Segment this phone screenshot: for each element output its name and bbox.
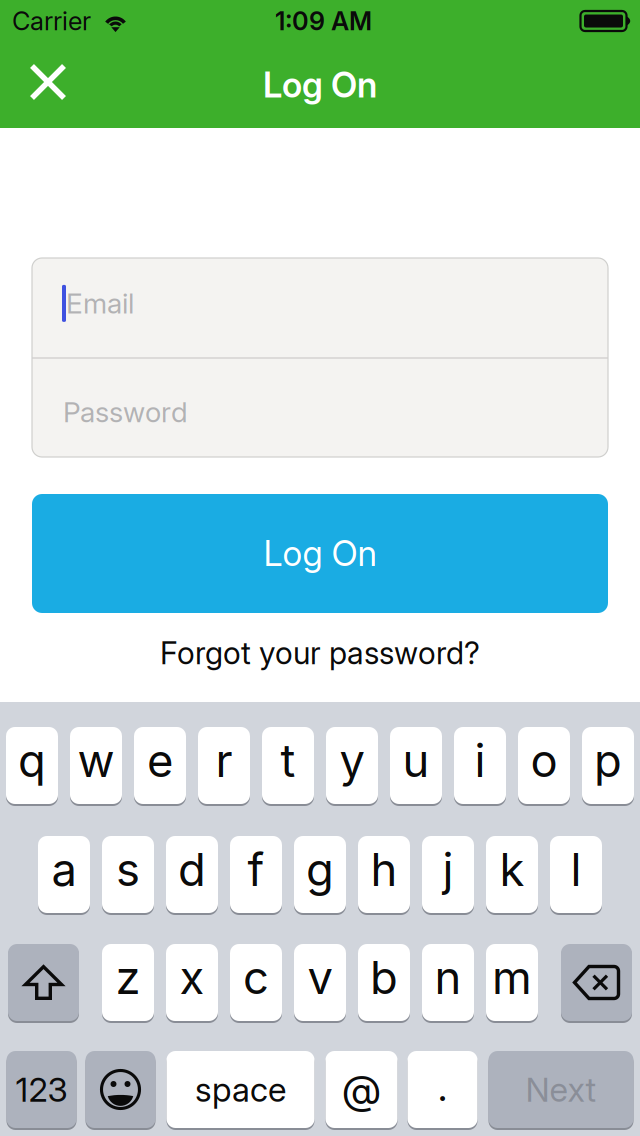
staticText: . xyxy=(438,1062,447,1111)
button[interactable]: p xyxy=(582,726,634,805)
staticText: l xyxy=(570,842,581,897)
staticText: q xyxy=(18,733,46,788)
staticText: i xyxy=(474,733,485,788)
button[interactable]: r xyxy=(198,726,250,805)
staticText: t xyxy=(280,733,295,788)
button[interactable] xyxy=(85,1050,155,1129)
staticText: 1:09 AM xyxy=(275,6,372,36)
button[interactable]: k xyxy=(486,835,538,914)
staticText: space xyxy=(195,1069,286,1110)
button[interactable]: u xyxy=(390,726,442,805)
staticText: Password xyxy=(63,395,188,429)
staticText: h xyxy=(370,842,397,897)
staticText: e xyxy=(147,733,173,788)
staticText: Log On xyxy=(263,532,376,574)
staticText: 123 xyxy=(15,1069,67,1110)
button[interactable]: . xyxy=(407,1050,477,1129)
button[interactable]: Forgot your password? xyxy=(32,630,608,676)
button[interactable]: n xyxy=(422,943,474,1022)
button[interactable]: space xyxy=(166,1050,314,1129)
staticText: r xyxy=(215,733,232,788)
button[interactable]: a xyxy=(38,835,90,914)
button[interactable]: o xyxy=(518,726,570,805)
staticText: c xyxy=(243,950,269,1005)
button[interactable]: x xyxy=(166,943,218,1022)
button[interactable]: w xyxy=(70,726,122,805)
staticText: g xyxy=(306,842,334,897)
staticText: s xyxy=(116,842,140,897)
staticText: Email xyxy=(66,286,134,320)
button[interactable]: y xyxy=(326,726,378,805)
staticText: Log On xyxy=(263,64,377,106)
button[interactable]: l xyxy=(550,835,602,914)
button[interactable]: z xyxy=(102,943,154,1022)
button[interactable]: t xyxy=(262,726,314,805)
staticText: d xyxy=(178,842,206,897)
staticText: j xyxy=(442,842,453,897)
staticText: a xyxy=(51,842,76,897)
staticText: p xyxy=(594,733,622,788)
button[interactable]: Log On xyxy=(32,494,608,613)
button[interactable]: h xyxy=(358,835,410,914)
button[interactable]: i xyxy=(454,726,506,805)
staticText: o xyxy=(530,733,557,788)
staticText: b xyxy=(370,950,398,1005)
button[interactable]: j xyxy=(422,835,474,914)
button[interactable]: b xyxy=(358,943,410,1022)
staticText: z xyxy=(115,950,140,1005)
button[interactable]: s xyxy=(102,835,154,914)
button[interactable]: v xyxy=(294,943,346,1022)
button[interactable]: Next xyxy=(488,1050,633,1129)
button[interactable]: m xyxy=(486,943,538,1022)
staticText: Carrier xyxy=(12,6,91,36)
button[interactable]: Close xyxy=(18,54,80,116)
staticText: k xyxy=(499,842,524,897)
staticText: w xyxy=(77,733,114,788)
staticText: y xyxy=(339,733,364,788)
button[interactable]: 123 xyxy=(6,1050,76,1129)
staticText: n xyxy=(434,950,461,1005)
staticText: x xyxy=(179,950,204,1005)
staticText: v xyxy=(307,950,332,1005)
staticText: Forgot your password? xyxy=(160,634,480,671)
button[interactable]: f xyxy=(230,835,282,914)
button[interactable]: @ xyxy=(325,1050,397,1129)
button[interactable] xyxy=(561,943,632,1022)
button[interactable]: d xyxy=(166,835,218,914)
button[interactable]: q xyxy=(6,726,58,805)
staticText: u xyxy=(402,733,429,788)
button[interactable]: c xyxy=(230,943,282,1022)
button[interactable] xyxy=(8,943,79,1022)
staticText: f xyxy=(247,842,264,897)
button[interactable]: e xyxy=(134,726,186,805)
button[interactable]: g xyxy=(294,835,346,914)
staticText: m xyxy=(492,950,532,1005)
staticText: Next xyxy=(525,1069,596,1110)
staticText: @ xyxy=(342,1065,381,1114)
